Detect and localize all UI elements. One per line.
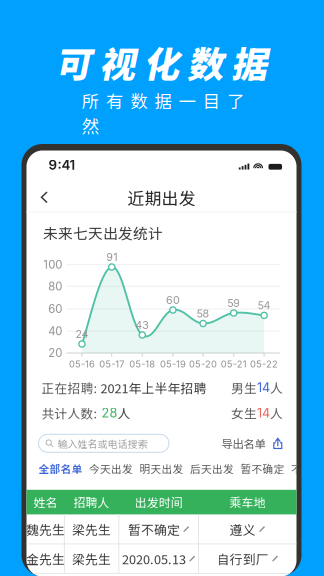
- staticText: 40: [48, 324, 62, 338]
- staticText: 60: [48, 302, 62, 316]
- staticText: 导出名单: [222, 435, 266, 451]
- button[interactable]: 输入姓名或电话搜索: [38, 434, 169, 452]
- staticText: 魏先生: [26, 520, 65, 538]
- button[interactable]: 明天出发: [138, 459, 184, 478]
- staticText: 05-16: [69, 358, 95, 370]
- staticText: 明天出发: [139, 461, 183, 476]
- staticText: 不去了: [291, 461, 324, 476]
- staticText: 所有数据一目了然: [82, 88, 268, 113]
- staticText: 05-19: [160, 358, 186, 370]
- staticText: 43: [135, 318, 149, 331]
- staticText: 梁先生: [72, 549, 111, 568]
- staticText: 未来七天出发统计: [43, 222, 163, 243]
- staticText: 人: [270, 404, 283, 422]
- button[interactable]: 不去了: [290, 459, 324, 478]
- staticText: 遵义: [230, 520, 256, 538]
- staticText: 共计人数:: [41, 404, 97, 422]
- staticText: 60: [166, 293, 180, 306]
- staticText: 近期出发: [127, 185, 195, 210]
- staticText: 14: [257, 380, 270, 395]
- staticText: 28: [97, 405, 117, 421]
- staticText: 91: [106, 250, 117, 263]
- button[interactable]: 返回: [29, 182, 59, 212]
- button[interactable]: 暂不确定: [239, 459, 285, 478]
- staticText: 人: [117, 404, 130, 422]
- button[interactable]: 后天出发: [189, 459, 235, 478]
- staticText: 2020.05.13: [122, 549, 186, 568]
- staticText: 05-20: [189, 358, 217, 370]
- staticText: 乘车地: [229, 493, 265, 511]
- staticText: 招聘人: [74, 493, 110, 511]
- button[interactable]: 全部名单: [37, 459, 83, 478]
- staticText: 人: [270, 378, 283, 397]
- staticText: 暂不确定: [128, 520, 180, 538]
- staticText: 54: [258, 299, 271, 312]
- staticText: 后天出发: [190, 461, 234, 476]
- staticText: 2021年上半年招聘: [97, 378, 206, 397]
- staticText: 金先生: [26, 549, 65, 568]
- staticText: 58: [197, 307, 210, 320]
- staticText: 今天出发: [89, 461, 133, 476]
- staticText: 正在招聘:: [41, 378, 97, 397]
- staticText: 20: [48, 346, 62, 360]
- staticText: 59: [227, 296, 240, 309]
- staticText: 9:41: [48, 157, 75, 173]
- staticText: 自行到厂: [217, 549, 269, 568]
- staticText: 男生: [231, 378, 257, 397]
- staticText: 梁先生: [72, 520, 111, 538]
- staticText: 14: [257, 405, 270, 421]
- staticText: 05-21: [221, 358, 247, 370]
- staticText: 可视化数据: [55, 36, 267, 88]
- staticText: 05-18: [129, 358, 155, 370]
- button[interactable]: 导出名单: [222, 435, 283, 451]
- staticText: 05-17: [99, 358, 124, 370]
- staticText: 女生: [231, 404, 257, 422]
- staticText: 姓名: [33, 493, 57, 511]
- button[interactable]: 今天出发: [88, 459, 134, 478]
- staticText: 输入姓名或电话搜索: [57, 436, 147, 451]
- staticText: 05-22: [250, 358, 278, 370]
- staticText: 全部名单: [38, 461, 82, 476]
- staticText: 100: [43, 258, 62, 271]
- staticText: 80: [48, 279, 62, 293]
- staticText: 24: [75, 327, 88, 340]
- staticText: 出发时间: [135, 493, 183, 511]
- staticText: 暂不确定: [240, 461, 284, 476]
